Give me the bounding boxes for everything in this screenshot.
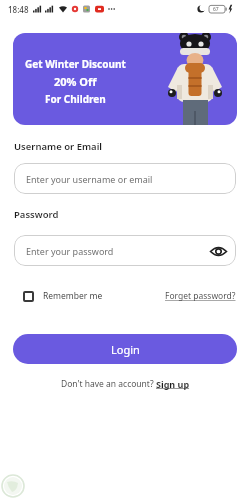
button[interactable]: [23, 291, 34, 302]
button[interactable]: Enter your password: [14, 235, 236, 266]
staticText: 18:48: [8, 4, 29, 15]
button[interactable]: Enter your username or email: [14, 163, 236, 194]
staticText: Get Winter Discount: [25, 57, 126, 71]
button[interactable]: Sign up: [156, 378, 190, 390]
staticText: Remember me: [43, 290, 103, 302]
staticText: Login: [111, 342, 140, 357]
button[interactable]: Forget password?: [165, 290, 236, 302]
staticText: 20% Off: [54, 74, 97, 89]
button[interactable]: Login: [13, 334, 237, 364]
staticText: Enter your username or email: [26, 173, 153, 185]
button[interactable]: Get Winter Discount: [13, 33, 237, 125]
staticText: 67: [213, 6, 219, 13]
staticText: Enter your password: [26, 245, 114, 257]
staticText: Don't have an account?: [61, 378, 156, 390]
staticText: For Children: [45, 92, 106, 106]
staticText: Password: [14, 208, 59, 221]
staticText: Username or Email: [14, 140, 103, 153]
